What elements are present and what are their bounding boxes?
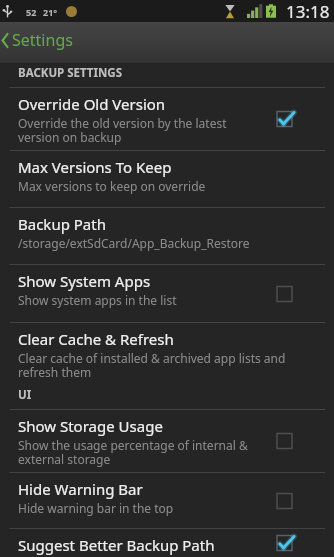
other: Navigate up: [1, 33, 9, 48]
button[interactable]: Unchecked: [277, 473, 334, 528]
staticText: Settings: [12, 29, 73, 51]
staticText: Show System Apps: [18, 271, 151, 291]
button[interactable]: Override Old Version: [0, 88, 334, 150]
staticText: Suggest Better Backup Path: [18, 535, 215, 555]
staticText: Backup Path: [18, 214, 106, 234]
button[interactable]: Checked: [277, 529, 334, 557]
staticText: Hide Warning Bar: [18, 479, 143, 499]
button[interactable]: Unchecked: [277, 265, 334, 322]
button[interactable]: Max Versions To Keep: [0, 151, 334, 207]
staticText: Max Versions To Keep: [18, 157, 172, 177]
button[interactable]: Backup Path: [0, 208, 334, 264]
staticText: 13:18: [286, 0, 330, 22]
staticText: 52: [26, 6, 37, 18]
staticText: Override the old version by the latest v…: [18, 115, 253, 146]
button[interactable]: Unchecked: [277, 410, 334, 472]
button[interactable]: Navigate up: [0, 22, 83, 57]
button[interactable]: Show Storage Usage: [0, 410, 334, 472]
button[interactable]: Suggest Better Backup Path: [0, 529, 334, 557]
staticText: Clear Cache & Refresh: [18, 329, 174, 349]
staticText: BACKUP SETTINGS: [18, 65, 122, 81]
staticText: /storage/extSdCard/App_Backup_Restore: [18, 235, 250, 251]
staticText: Hide warning bar in the top: [18, 500, 174, 516]
staticText: Clear cache of installed & archived app …: [18, 350, 288, 381]
staticText: Show Storage Usage: [18, 416, 163, 436]
button[interactable]: Show System Apps: [0, 265, 334, 322]
staticText: UI: [18, 387, 32, 403]
button[interactable]: Checked: [277, 88, 334, 150]
button[interactable]: Hide Warning Bar: [0, 473, 334, 528]
staticText: Override Old Version: [18, 94, 166, 114]
button[interactable]: Clear Cache & Refresh: [0, 323, 334, 385]
staticText: Show system apps in the list: [18, 292, 177, 308]
staticText: Show the usage percentage of internal & …: [18, 437, 253, 468]
staticText: Max versions to keep on override: [18, 178, 206, 194]
staticText: 21°: [43, 6, 58, 18]
